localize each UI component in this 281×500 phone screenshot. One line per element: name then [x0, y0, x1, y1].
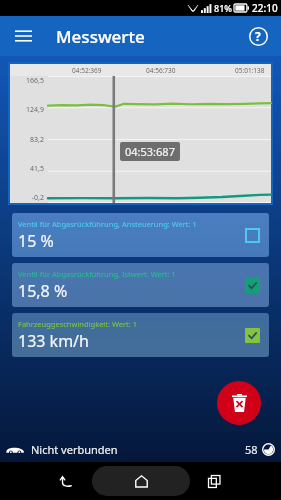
button[interactable]: Zurück	[52, 466, 82, 496]
staticText: ?	[255, 28, 261, 44]
button[interactable]: 04:52:369	[10, 64, 271, 203]
staticText: Messwerte	[56, 25, 145, 48]
staticText: Fahrzeuggeschwindigkeit: Wert: 1	[18, 319, 138, 329]
button[interactable]: Löschen	[217, 381, 261, 425]
button[interactable]: Ventil für Abgasrückführung, Ansteuerung…	[12, 213, 269, 257]
button[interactable]: Ventil für Abgasrückführung, Istwert: We…	[12, 263, 269, 307]
staticText: 22:10	[252, 1, 278, 15]
staticText: 05:01:138	[235, 66, 265, 75]
staticText: 166,5	[10, 76, 44, 86]
staticText: 58	[245, 442, 258, 457]
staticText: 133 km/h	[18, 330, 89, 352]
staticText: 04:53:687	[125, 144, 175, 159]
staticText: 83,2	[10, 135, 44, 145]
staticText: 41,5	[10, 164, 44, 174]
button[interactable]: Auswahl	[243, 326, 261, 344]
button[interactable]: Menü	[8, 21, 38, 51]
button[interactable]: Fahrzeuggeschwindigkeit: Wert: 1	[12, 313, 269, 357]
staticText: Nicht verbunden	[31, 442, 118, 457]
button[interactable]: Startseite	[92, 466, 190, 496]
button[interactable]: Auswahl	[243, 226, 261, 244]
button[interactable]: Nicht verbunden	[0, 436, 281, 462]
button[interactable]: Letzte Apps	[199, 466, 229, 496]
staticText: 15,8 %	[18, 280, 68, 302]
button[interactable]: Auswahl	[243, 276, 261, 294]
staticText: Ventil für Abgasrückführung, Ansteuerung…	[18, 219, 197, 229]
staticText: 81%	[214, 2, 232, 14]
staticText: 04:56:730	[146, 66, 176, 75]
button[interactable]: Hilfe	[243, 21, 273, 51]
staticText: Ventil für Abgasrückführung, Istwert: We…	[18, 269, 176, 279]
staticText: 124,9	[10, 105, 44, 115]
staticText: -0,2	[10, 193, 44, 203]
staticText: 04:52:369	[72, 66, 102, 75]
staticText: 15 %	[18, 230, 54, 252]
